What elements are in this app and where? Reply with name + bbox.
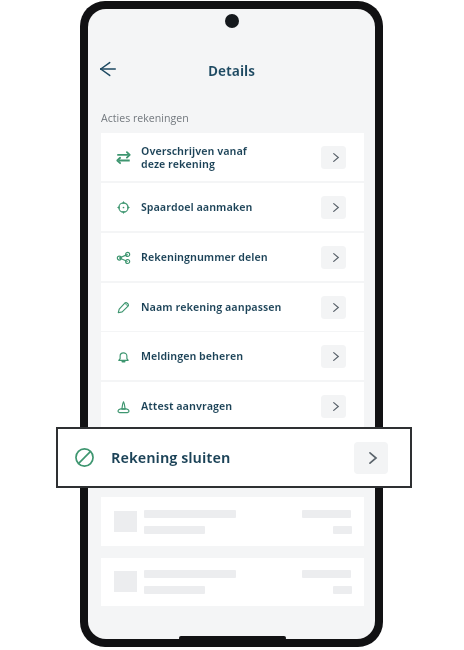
staticText: Rekening sluiten [141, 449, 230, 463]
button[interactable]: Attest aanvragen [101, 382, 364, 430]
staticText: Details [208, 62, 255, 80]
button[interactable]: Meldingen beheren [101, 332, 364, 380]
button[interactable]: Rekeningnummer delen [101, 233, 364, 281]
staticText: Attest aanvragen [141, 399, 233, 413]
button[interactable]: Overschrijven vanaf deze rekening [101, 133, 364, 181]
staticText: Naam rekening aanpassen [141, 300, 282, 314]
staticText: Acties rekeningen [101, 111, 189, 125]
staticText: Overschrijven vanaf deze rekening [141, 144, 247, 171]
button[interactable]: Rekening sluiten [58, 429, 410, 486]
button[interactable]: Back [90, 51, 126, 87]
button[interactable]: Rekening sluiten [101, 432, 364, 480]
button[interactable]: Naam rekening aanpassen [101, 283, 364, 331]
staticText: Rekening sluiten [111, 448, 231, 467]
button[interactable]: Spaardoel aanmaken [101, 183, 364, 231]
staticText: Meldingen beheren [141, 349, 244, 363]
staticText: Rekeningnummer delen [141, 250, 268, 264]
staticText: Spaardoel aanmaken [141, 200, 253, 214]
